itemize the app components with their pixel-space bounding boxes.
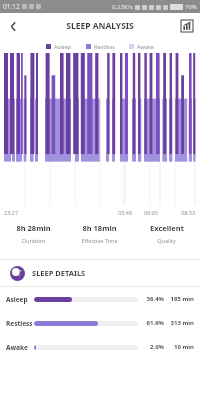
staticText: 08:33 bbox=[181, 209, 196, 216]
staticText: 185 min bbox=[164, 295, 194, 303]
button[interactable]: Statistics bbox=[174, 13, 200, 39]
staticText: Restless bbox=[94, 43, 115, 50]
staticText: Asleep bbox=[54, 43, 72, 50]
staticText: SLEEP ANALYSIS bbox=[66, 20, 134, 32]
staticText: 36.4% bbox=[142, 295, 164, 303]
staticText: 01:12 bbox=[3, 2, 20, 11]
button[interactable]: Awake bbox=[0, 335, 200, 359]
staticText: Effective Time bbox=[81, 237, 118, 244]
staticText: 2.0% bbox=[142, 343, 164, 351]
staticText: Asleep bbox=[6, 295, 34, 304]
staticText: 23:27 bbox=[4, 209, 19, 216]
button[interactable]: Asleep bbox=[0, 287, 200, 311]
staticText: 0.23K/s bbox=[112, 3, 133, 11]
staticText: Duration bbox=[22, 237, 45, 244]
staticText: Quality bbox=[157, 237, 176, 244]
staticText: 8h 18min bbox=[82, 223, 117, 233]
staticText: 8h 28min bbox=[16, 223, 51, 233]
staticText: 05:49 bbox=[118, 209, 133, 216]
button[interactable]: SLEEP DETAILS bbox=[0, 260, 200, 286]
staticText: Awake bbox=[137, 43, 154, 50]
staticText: 06:05 bbox=[144, 209, 159, 216]
staticText: 76% bbox=[185, 3, 197, 11]
staticText: 313 min bbox=[164, 319, 194, 327]
staticText: Awake bbox=[6, 343, 34, 352]
staticText: Excellent bbox=[150, 223, 184, 233]
staticText: 61.6% bbox=[142, 319, 164, 327]
staticText: Restless bbox=[6, 319, 34, 328]
staticText: SLEEP DETAILS bbox=[32, 268, 86, 278]
staticText: 10 min bbox=[164, 343, 194, 351]
button[interactable]: Back bbox=[0, 13, 26, 39]
button[interactable]: Restless bbox=[0, 311, 200, 335]
